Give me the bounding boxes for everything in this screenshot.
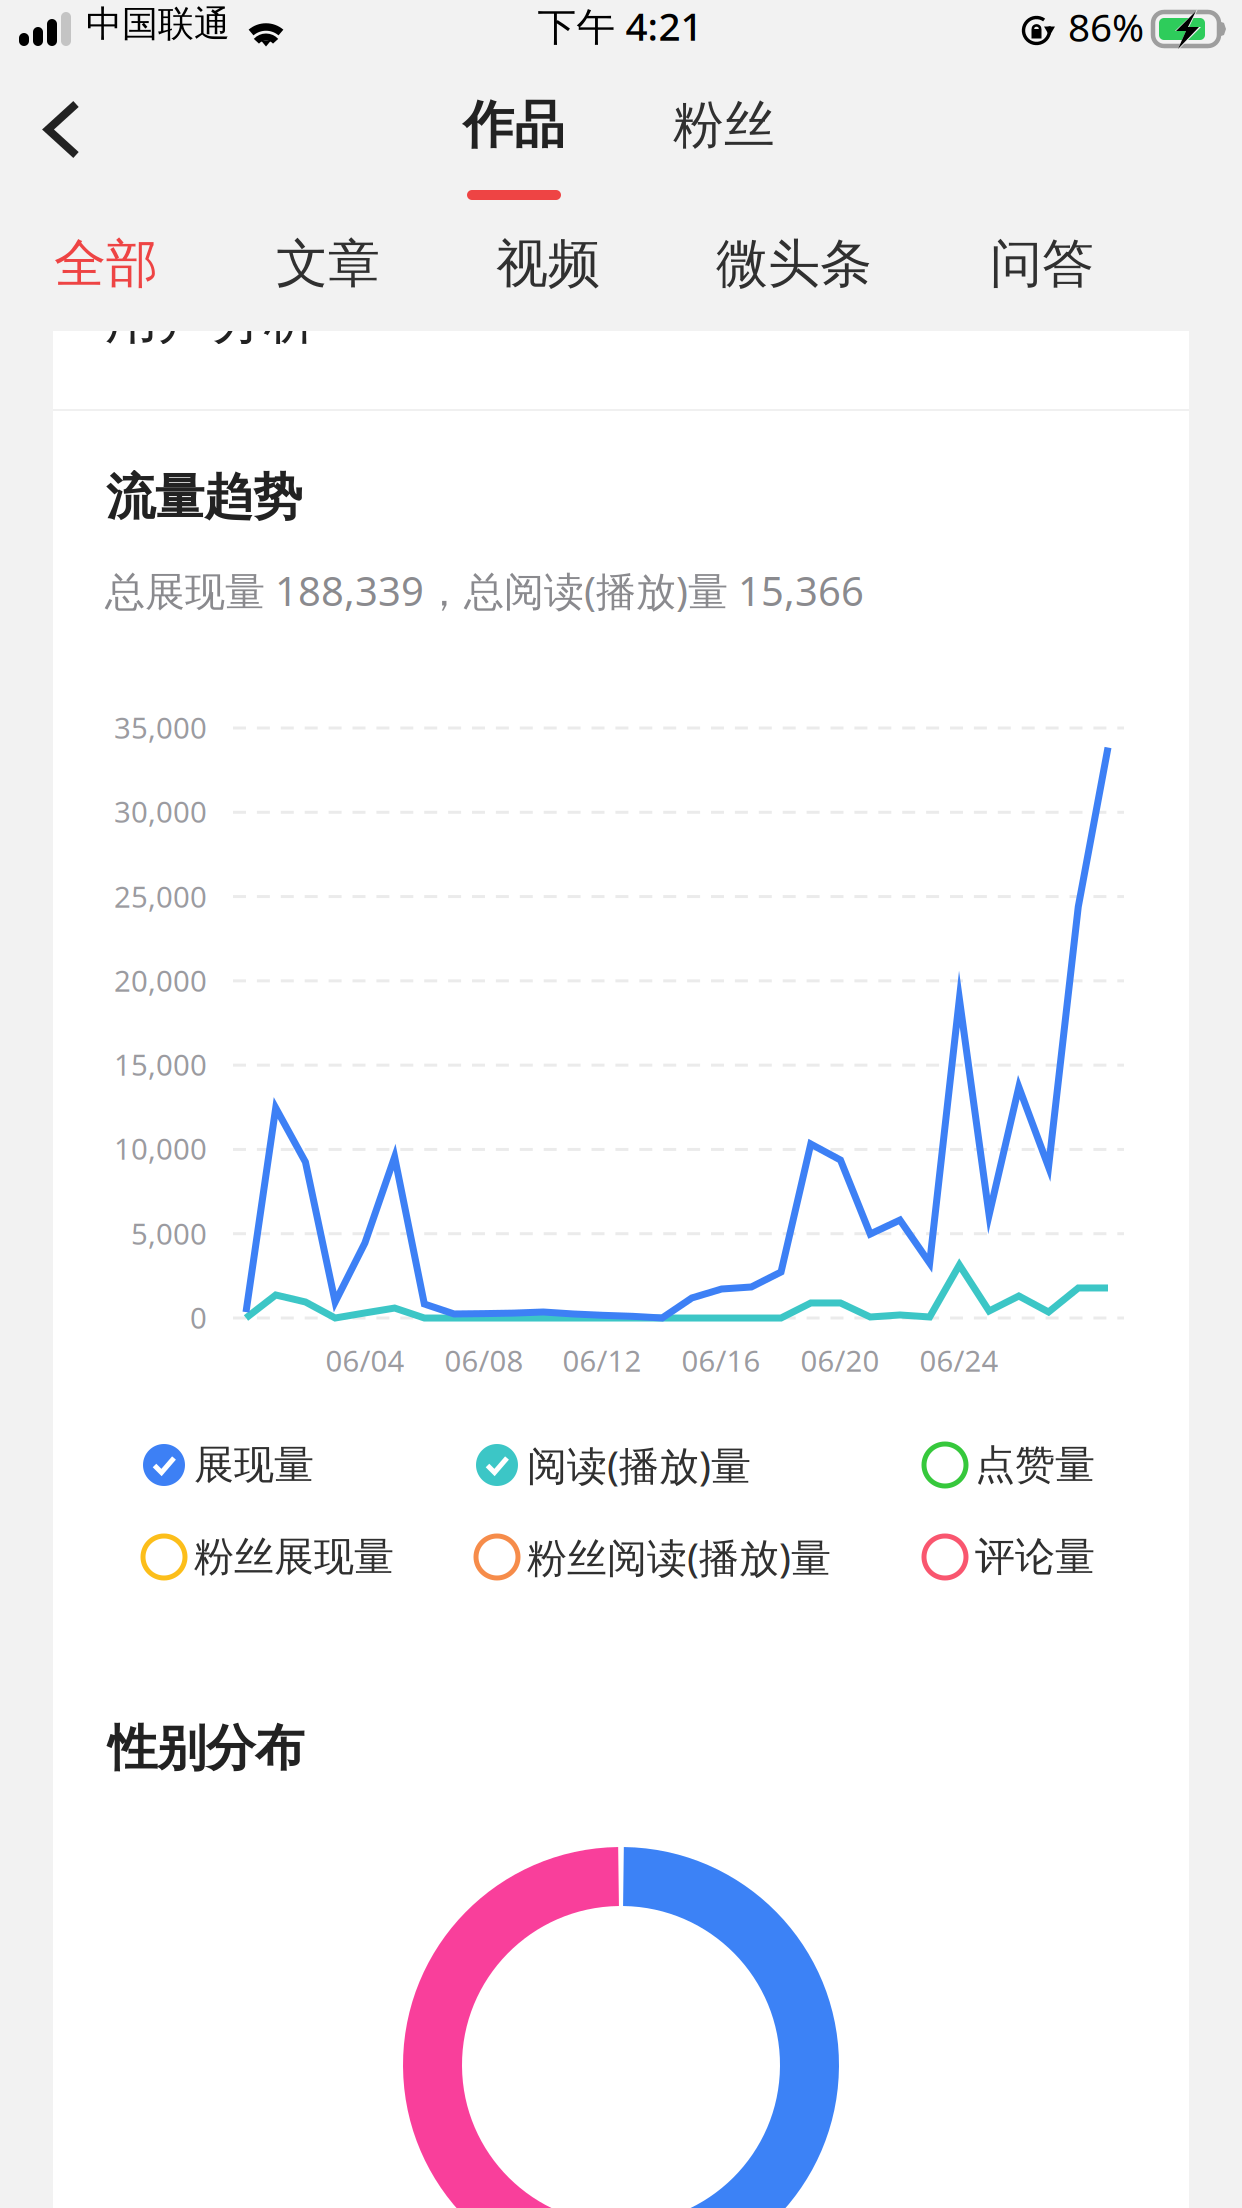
button[interactable]: 点赞量 bbox=[924, 1441, 1194, 1489]
button[interactable]: 评论量 bbox=[924, 1533, 1194, 1581]
staticText: 评论量 bbox=[975, 1532, 1095, 1581]
staticText: 微头条 bbox=[716, 232, 872, 296]
staticText: 视频 bbox=[496, 232, 600, 296]
staticText: 35,000 bbox=[114, 708, 207, 747]
staticText: 阅读(播放)量 bbox=[527, 1438, 751, 1491]
staticText: 25,000 bbox=[114, 877, 207, 916]
staticText: 用户分析 bbox=[105, 287, 317, 352]
button[interactable]: 作品 bbox=[443, 80, 583, 204]
staticText: 06/16 bbox=[681, 1341, 760, 1380]
staticText: 30,000 bbox=[114, 792, 207, 831]
staticText: 15,000 bbox=[114, 1045, 207, 1084]
staticText: 粉丝阅读(播放)量 bbox=[527, 1530, 831, 1583]
button[interactable]: 问答 bbox=[982, 214, 1117, 310]
button[interactable]: Back bbox=[16, 74, 128, 178]
staticText: 作品 bbox=[463, 94, 565, 156]
staticText: 性别分布 bbox=[108, 1718, 304, 1779]
staticText: 下午 4:21 bbox=[537, 0, 702, 51]
staticText: 20,000 bbox=[114, 961, 207, 1000]
staticText: 流量趋势 bbox=[106, 467, 302, 528]
staticText: 06/12 bbox=[562, 1341, 641, 1380]
button[interactable]: 视频 bbox=[488, 214, 623, 310]
button[interactable]: 微头条 bbox=[708, 214, 903, 310]
staticText: 粉丝 bbox=[673, 94, 775, 156]
button[interactable]: 粉丝 bbox=[653, 80, 793, 204]
staticText: 文章 bbox=[276, 232, 380, 296]
staticText: 点赞量 bbox=[975, 1440, 1095, 1489]
button[interactable]: 文章 bbox=[268, 214, 403, 310]
staticText: 5,000 bbox=[131, 1214, 207, 1253]
staticText: 10,000 bbox=[114, 1129, 207, 1168]
staticText: 86% bbox=[1068, 1, 1144, 52]
staticText: 总展现量 188,339，总阅读(播放)量 15,366 bbox=[105, 564, 864, 617]
staticText: 粉丝展现量 bbox=[194, 1532, 394, 1581]
staticText: 06/08 bbox=[444, 1341, 523, 1380]
button[interactable]: 展现量 bbox=[143, 1441, 463, 1489]
staticText: 展现量 bbox=[194, 1440, 314, 1489]
staticText: 问答 bbox=[990, 232, 1094, 296]
staticText: 0 bbox=[190, 1298, 207, 1337]
staticText: 06/04 bbox=[325, 1341, 404, 1380]
staticText: 全部 bbox=[54, 232, 158, 296]
staticText: 中国联通 bbox=[86, 2, 230, 46]
button[interactable]: 粉丝阅读(播放)量 bbox=[476, 1533, 906, 1581]
staticText: 06/24 bbox=[919, 1341, 998, 1380]
button[interactable]: 全部 bbox=[46, 214, 181, 310]
button[interactable]: 粉丝展现量 bbox=[143, 1533, 463, 1581]
staticText: 06/20 bbox=[800, 1341, 879, 1380]
button[interactable]: 阅读(播放)量 bbox=[476, 1441, 906, 1489]
